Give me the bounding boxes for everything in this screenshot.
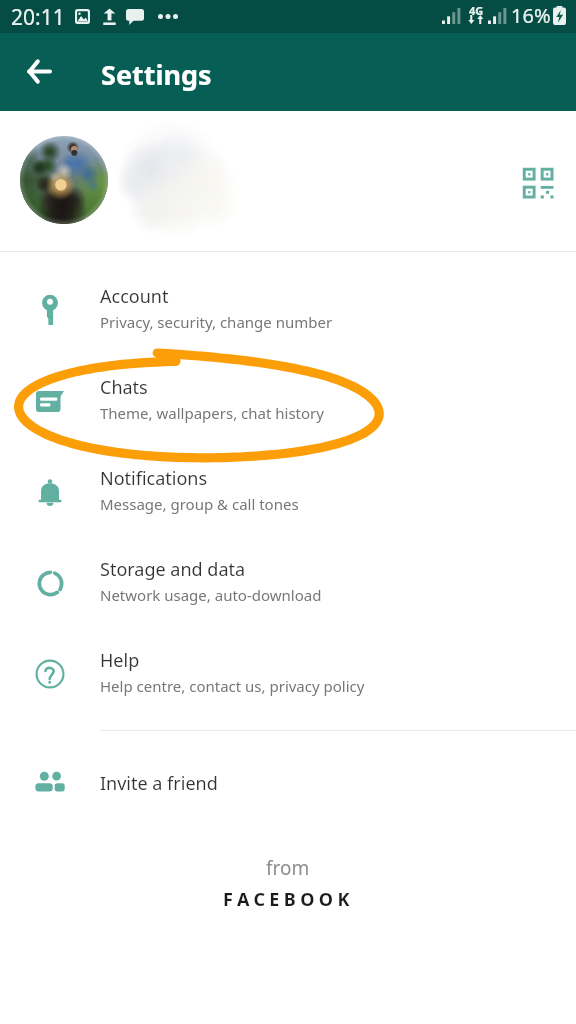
staticText: FACEBOOK xyxy=(223,887,354,912)
staticText: 4G xyxy=(469,3,484,18)
staticText: 16% xyxy=(511,2,551,29)
staticText: Theme, wallpapers, chat history xyxy=(100,403,324,423)
staticText: Network usage, auto-download xyxy=(100,585,322,605)
button[interactable]: Chats xyxy=(0,356,576,447)
button[interactable]: Back xyxy=(13,45,65,97)
button[interactable]: QR code xyxy=(0,111,576,251)
staticText: from xyxy=(266,855,310,881)
button[interactable]: Invite a friend xyxy=(0,738,576,829)
button[interactable]: Help xyxy=(0,629,576,720)
staticText: Privacy, security, change number xyxy=(100,312,333,332)
button[interactable]: Account xyxy=(0,265,576,356)
staticText: Help centre, contact us, privacy policy xyxy=(100,676,365,696)
staticText: Notifications xyxy=(100,466,208,491)
staticText: Message, group & call tones xyxy=(100,494,299,514)
staticText: Invite a friend xyxy=(100,771,218,796)
button[interactable]: Storage and data xyxy=(0,538,576,629)
staticText: Account xyxy=(100,284,169,309)
staticText: Help xyxy=(100,648,140,673)
staticText: Settings xyxy=(101,56,212,93)
staticText: 20:11 xyxy=(11,3,65,32)
button[interactable]: Notifications xyxy=(0,447,576,538)
button[interactable]: QR code xyxy=(511,156,565,210)
staticText: Chats xyxy=(100,375,148,400)
staticText: Storage and data xyxy=(100,557,246,582)
